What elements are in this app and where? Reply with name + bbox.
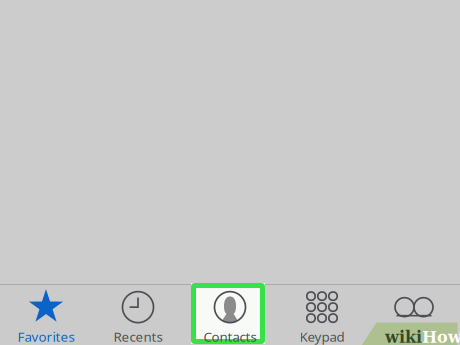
staticText: How [422,328,460,345]
staticText: Keypad [299,328,344,345]
button[interactable]: Recents [92,285,184,345]
button[interactable]: Keypad [276,285,368,345]
button[interactable]: Voicemail [368,285,460,345]
button[interactable]: Favorites [0,285,92,345]
staticText: Recents [113,328,162,345]
staticText: Voicemail [385,328,443,345]
staticText: Favorites [17,328,74,345]
staticText: Contacts [203,328,256,345]
staticText: wiki [385,328,422,345]
button[interactable]: Contacts [184,285,276,345]
